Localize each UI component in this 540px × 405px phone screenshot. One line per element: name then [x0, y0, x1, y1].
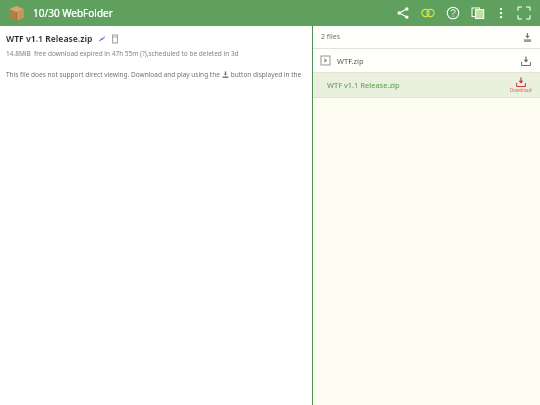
button[interactable]: WTF.zip — [313, 49, 540, 72]
button[interactable]: Download WTF.zip — [518, 53, 534, 69]
staticText: WTF.zip — [337, 56, 364, 66]
button[interactable]: Download all — [520, 30, 534, 44]
staticText: This file does not support direct viewin… — [6, 70, 222, 79]
button[interactable]: Fullscreen — [514, 3, 534, 23]
staticText: 14.8MiB free download expired in 47h 55m… — [6, 49, 239, 58]
button[interactable]: WTF v1.1 Release.zip — [313, 73, 540, 97]
staticText: WTF v1.1 Release.zip — [6, 33, 93, 45]
button[interactable]: Device — [110, 34, 120, 44]
button[interactable]: Download WTF v1.1 Release.zip — [508, 77, 534, 93]
button[interactable]: Copy — [468, 3, 488, 23]
button[interactable]: More options — [491, 3, 511, 23]
staticText: Download — [510, 87, 532, 93]
staticText: WTF v1.1 Release.zip — [327, 80, 400, 90]
button[interactable]: App icon — [7, 4, 25, 22]
button[interactable]: Help — [443, 3, 463, 23]
staticText: 10/30 WebFolder — [33, 6, 113, 20]
button[interactable]: 2 files — [313, 26, 540, 48]
staticText: 2 files — [321, 32, 341, 42]
button[interactable]: Copy link — [97, 34, 107, 44]
button[interactable]: Share — [393, 3, 413, 23]
button[interactable]: Infinite link — [418, 3, 438, 23]
staticText: button displayed in the file list. — [229, 70, 306, 79]
